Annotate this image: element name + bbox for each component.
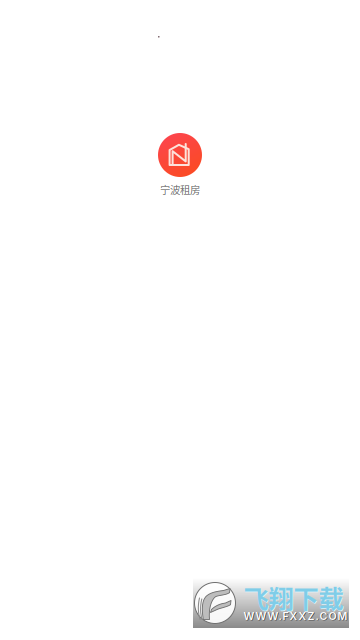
staticText: 宁波租房 bbox=[160, 182, 200, 197]
staticText: 飞翔下载 bbox=[243, 579, 343, 616]
staticText: WWW.FXXZ.COM bbox=[243, 609, 347, 622]
button[interactable]: 宁波租房 bbox=[158, 133, 202, 197]
staticText: WWW.FXXZ.COM bbox=[244, 610, 348, 623]
staticText: 飞翔下载 bbox=[244, 580, 344, 617]
